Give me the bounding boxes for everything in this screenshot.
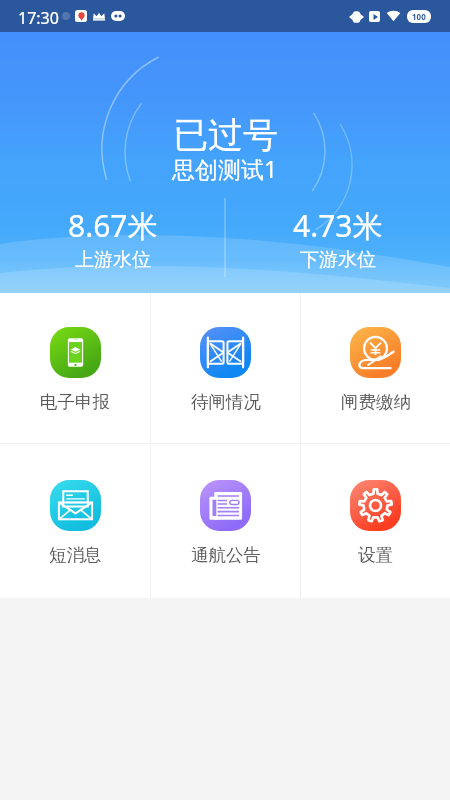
other: 短消息 [50,480,101,531]
button[interactable]: 设置 [301,444,450,598]
button[interactable]: 通航公告 [151,444,300,598]
other: 电子申报 [50,327,101,378]
other: 设置 [350,480,401,531]
button[interactable]: 短消息 [0,444,150,598]
staticText: 通航公告 [191,544,261,566]
staticText: 设置 [358,544,393,566]
other: 通航公告 [200,480,251,531]
staticText: 100 [412,11,426,22]
other: 闸费缴纳 [350,327,401,378]
staticText: 思创测试1 [172,153,278,184]
staticText: 4.73米 [293,205,383,246]
staticText: 电子申报 [40,391,110,413]
button[interactable]: 闸费缴纳 [301,293,450,443]
button[interactable]: 电子申报 [0,293,150,443]
staticText: 上游水位 [75,248,151,272]
button[interactable]: 待闸情况 [151,293,300,443]
staticText: 8.67米 [68,205,158,246]
other: 待闸情况 [200,327,251,378]
staticText: 闸费缴纳 [341,391,411,413]
staticText: 短消息 [49,544,102,566]
staticText: 已过号 [173,113,278,157]
staticText: 待闸情况 [191,391,261,413]
staticText: 下游水位 [300,248,376,272]
staticText: 17:30 [18,7,59,29]
